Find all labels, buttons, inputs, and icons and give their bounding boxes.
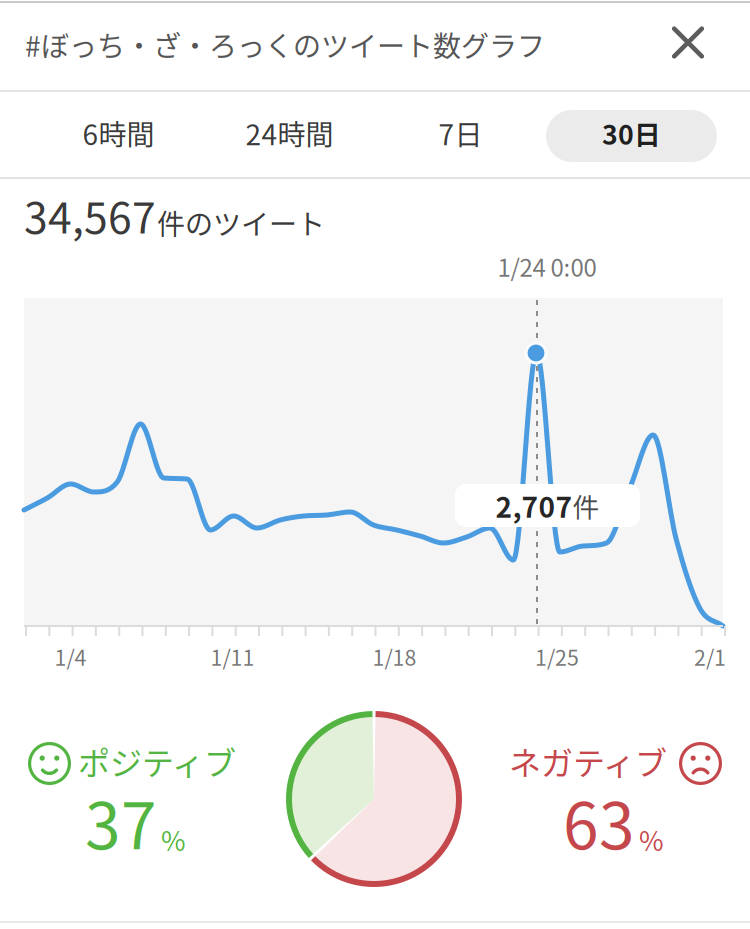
staticText: % (639, 820, 664, 859)
staticText: 1/4 (55, 641, 87, 672)
staticText: 件のツイート (157, 202, 325, 243)
staticText: ネガティブ (509, 738, 667, 784)
staticText: 1/24 0:00 (497, 249, 596, 284)
staticText: 2/1 (694, 641, 726, 672)
staticText: 34,567 (24, 184, 156, 246)
button[interactable]: Close (672, 28, 750, 60)
staticText: 24時間 (245, 113, 333, 153)
button[interactable]: 24時間 (204, 110, 375, 162)
staticText: #ぼっち・ざ・ろっくのツイート数グラフ (25, 24, 545, 65)
staticText: 1/11 (210, 641, 254, 672)
staticText: 件 (572, 486, 599, 525)
button[interactable]: 30日 (546, 110, 717, 162)
staticText: 1/18 (373, 641, 417, 672)
staticText: 63 (563, 775, 635, 868)
staticText: ポジティブ (78, 738, 236, 784)
staticText: 30日 (602, 114, 661, 152)
staticText: 7日 (438, 113, 482, 153)
staticText: % (161, 820, 186, 859)
button[interactable]: 7日 (375, 110, 546, 162)
staticText: 1/25 (535, 641, 579, 672)
staticText: 2,707 (495, 485, 572, 526)
staticText: 37 (85, 775, 157, 868)
staticText: 6時間 (82, 113, 154, 153)
button[interactable]: 6時間 (33, 110, 204, 162)
